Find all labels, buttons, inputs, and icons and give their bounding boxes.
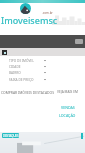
button[interactable]: Buscar	[2, 50, 7, 55]
staticText: BAIRRO	[9, 71, 21, 75]
staticText: DESTAQUES	[3, 134, 19, 138]
button[interactable]: DESTAQUES	[2, 133, 19, 138]
staticText: CIDADE	[9, 65, 21, 69]
staticText: TIPO DE IMÓVEL	[9, 59, 34, 63]
button[interactable]: Menu	[75, 39, 83, 44]
staticText: FAIXA DE PREÇO	[9, 78, 34, 82]
staticText: COMPRAR IMÓVEIS DESTACADOS	[1, 90, 55, 95]
button[interactable]: LOCAÇÃO	[52, 112, 83, 119]
button[interactable]: FAIXA DE PREÇO	[0, 76, 47, 83]
button[interactable]: BAIRRO	[0, 69, 47, 76]
staticText: .com.br	[42, 11, 53, 15]
button[interactable]: CIDADE	[0, 63, 47, 70]
staticText: LOCAÇÃO	[59, 113, 76, 118]
staticText: VENDAS	[61, 105, 75, 110]
staticText: VEJA MAIS EM	[57, 90, 78, 94]
staticText: Imoveisemsc	[1, 14, 58, 26]
button[interactable]: TIPO DE IMÓVEL	[0, 57, 47, 64]
button[interactable]: VENDAS	[52, 104, 83, 111]
